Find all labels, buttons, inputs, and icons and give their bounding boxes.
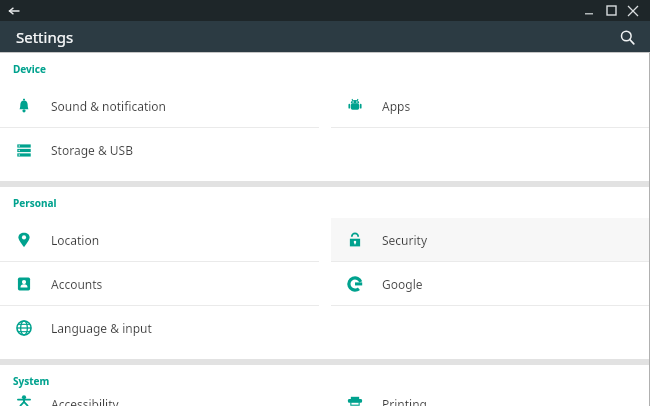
staticText: Google — [382, 276, 423, 292]
button[interactable]: Back — [4, 1, 24, 21]
staticText: Accounts — [51, 276, 103, 292]
staticText: Settings — [16, 27, 74, 47]
button[interactable]: Close — [622, 0, 644, 21]
button[interactable]: Language & input — [0, 306, 319, 350]
button[interactable]: Security — [331, 218, 650, 262]
button[interactable]: Accessibility — [0, 396, 319, 406]
staticText: System — [13, 374, 50, 388]
staticText: Sound & notification — [51, 98, 167, 114]
staticText: Storage & USB — [51, 142, 133, 158]
staticText: Personal — [13, 196, 57, 210]
button[interactable]: Accounts — [0, 262, 319, 306]
button[interactable]: Storage & USB — [0, 128, 319, 172]
button[interactable]: Search — [614, 24, 640, 50]
staticText: Device — [13, 62, 46, 76]
staticText: Location — [51, 232, 100, 248]
staticText: Accessibility — [51, 396, 119, 406]
button[interactable]: Apps — [331, 84, 650, 128]
button[interactable]: Sound & notification — [0, 84, 319, 128]
button[interactable]: Printing — [331, 396, 650, 406]
staticText: Apps — [382, 98, 411, 114]
staticText: Security — [382, 232, 428, 248]
button[interactable]: Location — [0, 218, 319, 262]
button[interactable]: Maximize — [600, 0, 622, 21]
button[interactable]: Minimize — [578, 0, 600, 21]
staticText: Printing — [382, 396, 427, 406]
button[interactable]: Google — [331, 262, 650, 306]
staticText: Language & input — [51, 320, 152, 336]
